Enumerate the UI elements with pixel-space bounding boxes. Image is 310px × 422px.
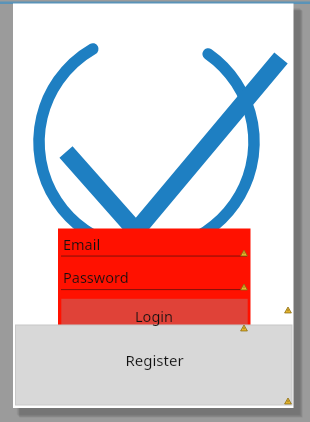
button[interactable]: Login	[60, 298, 248, 333]
staticText: Password	[63, 267, 129, 287]
button[interactable]: Password	[60, 263, 248, 290]
staticText: Register	[125, 350, 184, 370]
staticText: Email	[63, 234, 101, 254]
staticText: Login	[135, 306, 173, 326]
button[interactable]: Register	[16, 325, 293, 405]
button[interactable]: Email	[60, 230, 248, 257]
